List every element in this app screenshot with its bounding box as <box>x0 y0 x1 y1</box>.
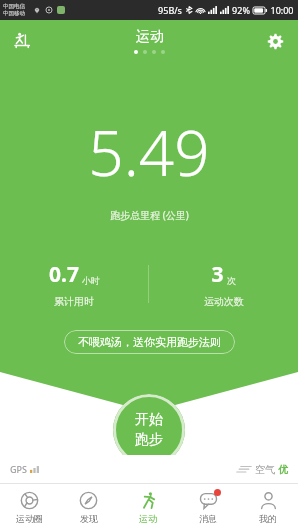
button[interactable]: 运动圈 <box>0 487 59 528</box>
staticText: 5.49 <box>88 110 210 194</box>
staticText: 优 <box>278 463 288 476</box>
staticText: GPS <box>10 463 27 475</box>
staticText: 空气 <box>255 463 275 476</box>
staticText: 运动次数 <box>204 295 244 308</box>
staticText: 运动圈 <box>16 513 43 524</box>
button[interactable]: Treadmill <box>8 26 38 56</box>
staticText: 累计用时 <box>54 295 94 308</box>
staticText: 运动 <box>139 513 157 524</box>
staticText: 运动 <box>136 28 164 46</box>
button[interactable]: GPS <box>10 463 39 475</box>
button[interactable]: 开始 <box>113 394 185 466</box>
staticText: 开始 <box>135 411 163 429</box>
staticText: 95B/s <box>158 4 182 16</box>
staticText: 跑步 <box>135 431 163 449</box>
staticText: 跑步总里程 (公里) <box>110 208 189 222</box>
staticText: 3 <box>211 260 224 289</box>
staticText: 中国移动 <box>3 10 25 17</box>
button[interactable]: 消息 <box>178 487 238 528</box>
button[interactable]: Settings <box>262 28 288 54</box>
button[interactable]: 空气 <box>236 463 288 476</box>
button[interactable]: 我的 <box>238 487 298 528</box>
staticText: 不喂鸡汤，送你实用跑步法则 <box>78 335 221 349</box>
staticText: 发现 <box>80 513 98 524</box>
button[interactable]: 不喂鸡汤，送你实用跑步法则 <box>64 330 235 354</box>
staticText: 中国电信 <box>3 3 25 10</box>
staticText: 次 <box>227 275 236 286</box>
staticText: 0.7 <box>49 260 79 289</box>
staticText: 10:00 <box>270 4 294 16</box>
staticText: 92% <box>232 4 250 16</box>
staticText: 我的 <box>259 513 277 524</box>
button[interactable]: 运动 <box>118 487 178 528</box>
button[interactable]: 发现 <box>59 487 118 528</box>
staticText: 小时 <box>82 275 100 286</box>
staticText: 消息 <box>199 513 217 524</box>
